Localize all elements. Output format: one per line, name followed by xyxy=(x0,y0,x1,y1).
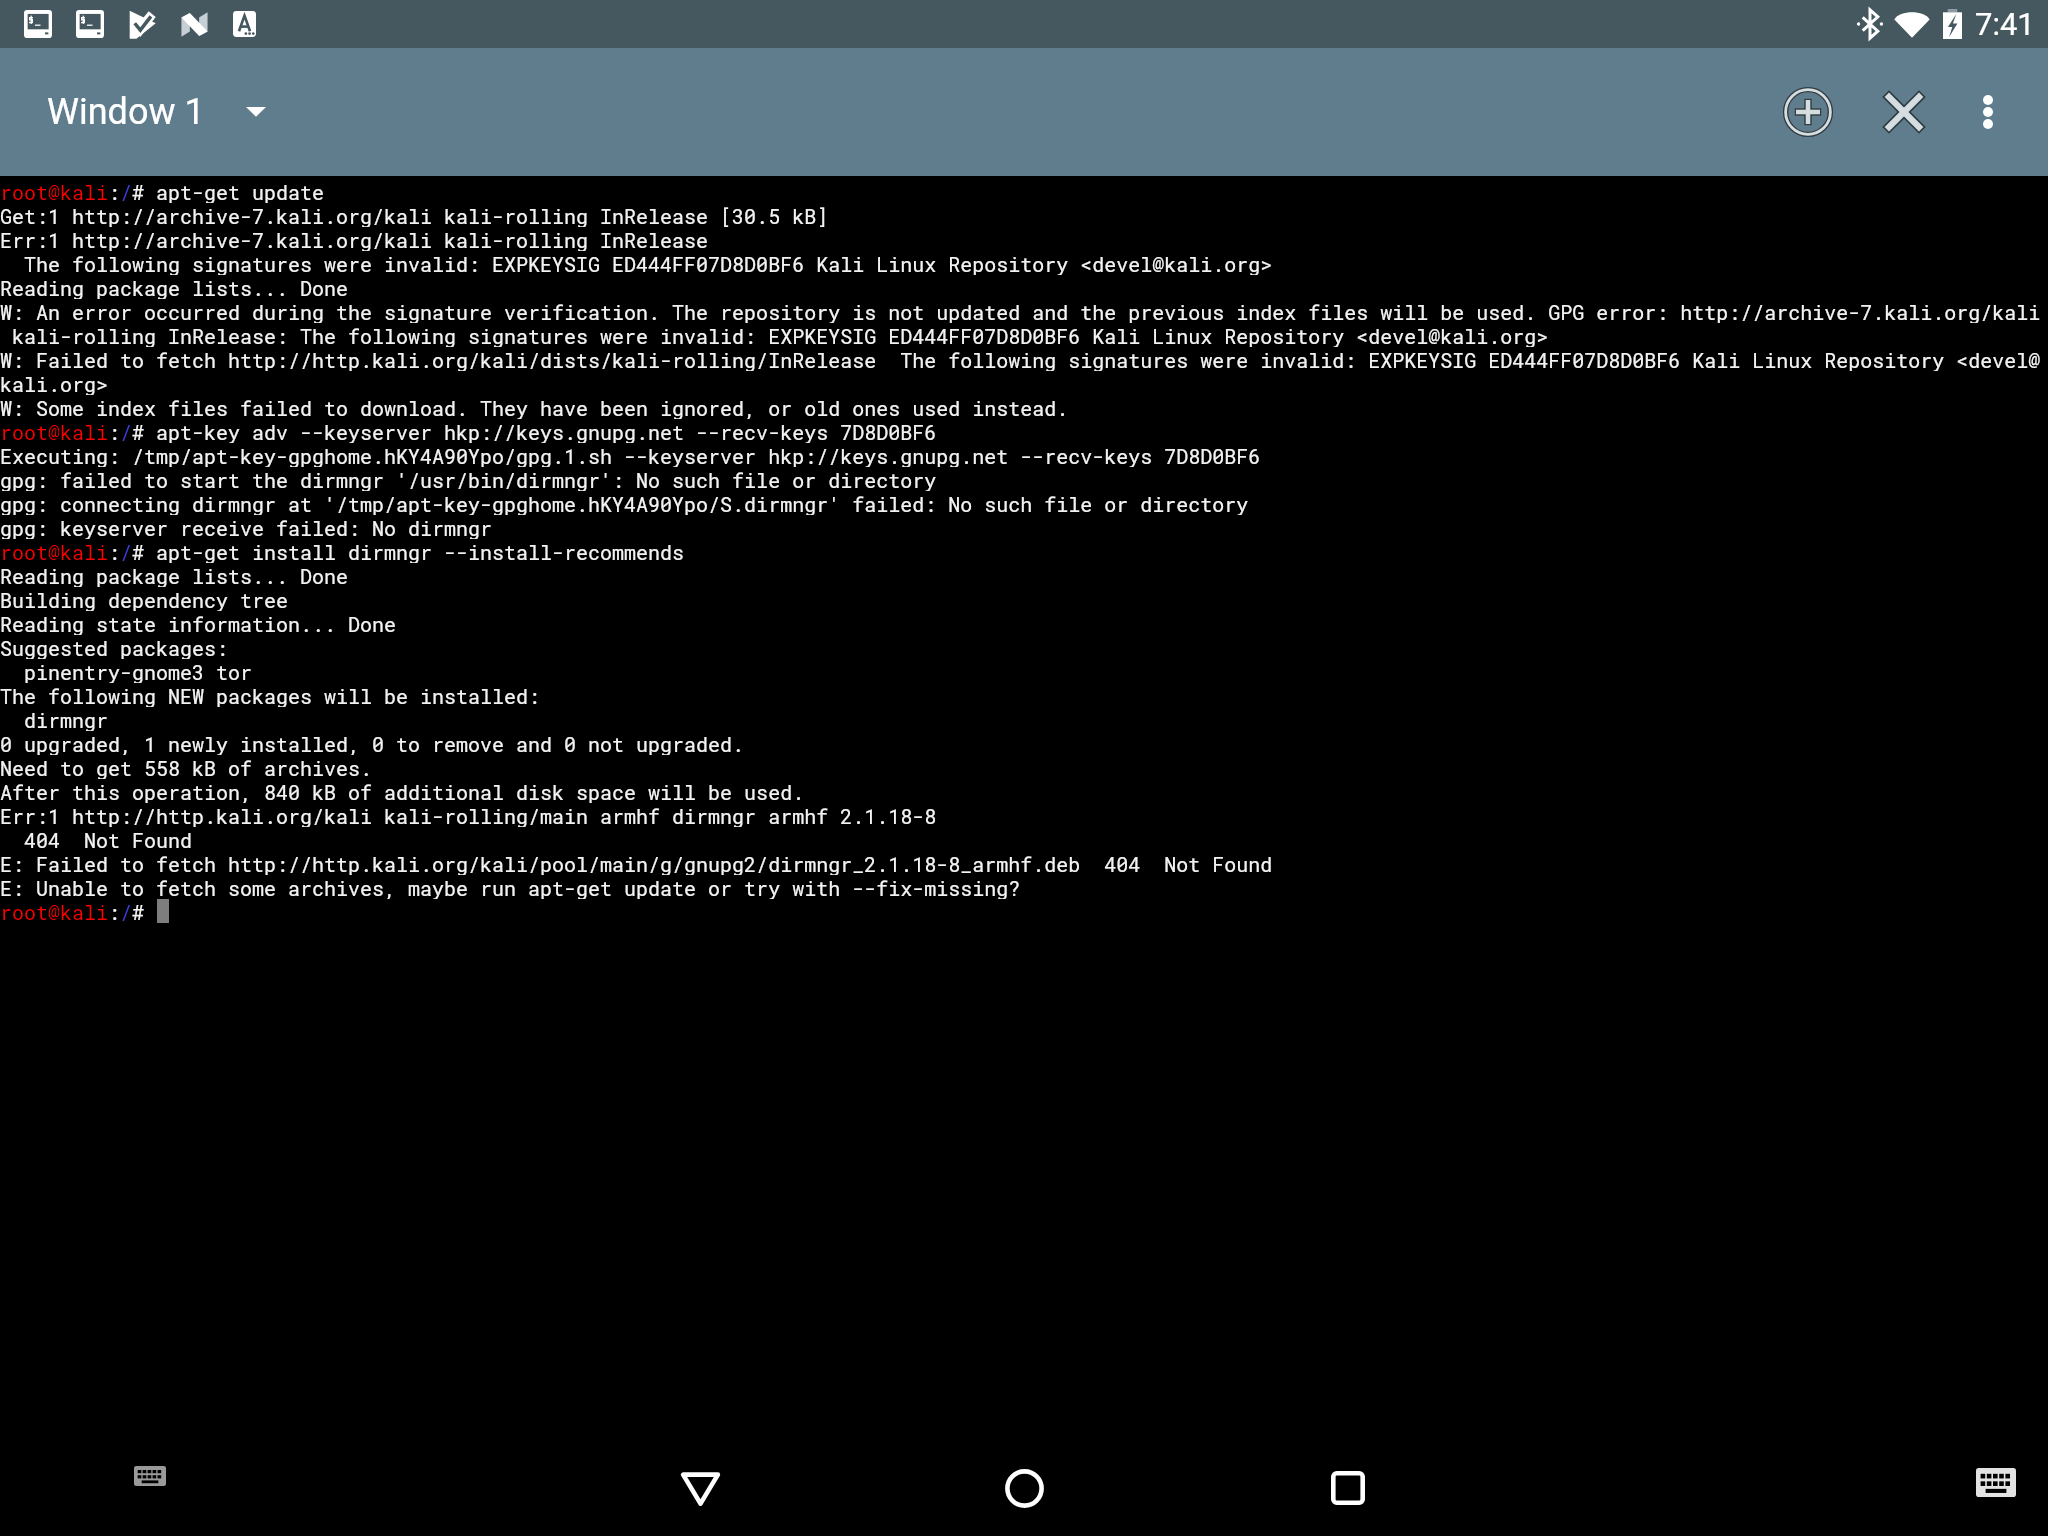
staticText: 404 Not Found xyxy=(0,827,193,851)
staticText: Reading state information... Done xyxy=(0,611,397,635)
staticText: root@kali:/# apt-get update xyxy=(0,179,325,203)
staticText: root@kali:/# xyxy=(0,899,157,923)
staticText: After this operation, 840 kB of addition… xyxy=(0,779,805,803)
staticText: Executing: /tmp/apt-key-gpghome.hKY4A90Y… xyxy=(0,443,1261,467)
button[interactable]: Show keyboard xyxy=(1960,1452,2032,1512)
button[interactable]: Close window xyxy=(1862,70,1946,154)
staticText: Window 1 xyxy=(47,91,205,133)
button[interactable]: root@kali:/# apt-get update xyxy=(0,176,2048,1428)
button[interactable]: New window xyxy=(1766,70,1850,154)
staticText: dirmngr xyxy=(0,707,109,731)
staticText: 0 upgraded, 1 newly installed, 0 to remo… xyxy=(0,731,745,755)
staticText: gpg: failed to start the dirmngr '/usr/b… xyxy=(0,467,937,491)
staticText: The following NEW packages will be insta… xyxy=(0,683,541,707)
button[interactable]: More options xyxy=(1952,76,2024,148)
staticText: W: Failed to fetch http://http.kali.org/… xyxy=(0,347,2041,371)
staticText: root@kali:/# apt-get install dirmngr --i… xyxy=(0,539,685,563)
button[interactable]: Window 1 xyxy=(0,48,290,176)
button[interactable]: Back xyxy=(652,1440,748,1536)
staticText: 7:41 xyxy=(1975,6,2035,42)
staticText: Building dependency tree xyxy=(0,587,289,611)
staticText: E: Failed to fetch http://http.kali.org/… xyxy=(0,851,1273,875)
staticText: root@kali:/# apt-key adv --keyserver hkp… xyxy=(0,419,937,443)
staticText: The following signatures were invalid: E… xyxy=(0,251,1273,275)
staticText: E: Unable to fetch some archives, maybe … xyxy=(0,875,1021,899)
staticText: kali.org> xyxy=(0,371,109,395)
button[interactable]: Recent apps xyxy=(1300,1440,1396,1536)
staticText: gpg: keyserver receive failed: No dirmng… xyxy=(0,515,493,539)
staticText: W: Some index files failed to download. … xyxy=(0,395,1069,419)
staticText: gpg: connecting dirmngr at '/tmp/apt-key… xyxy=(0,491,1249,515)
staticText: Reading package lists... Done xyxy=(0,275,349,299)
staticText: Get:1 http://archive-7.kali.org/kali kal… xyxy=(0,203,829,227)
staticText: Err:1 http://http.kali.org/kali kali-rol… xyxy=(0,803,937,827)
staticText: Reading package lists... Done xyxy=(0,563,349,587)
staticText: Need to get 558 kB of archives. xyxy=(0,755,373,779)
staticText: pinentry-gnome3 tor xyxy=(0,659,253,683)
staticText: Suggested packages: xyxy=(0,635,229,659)
staticText: W: An error occurred during the signatur… xyxy=(0,299,2041,323)
staticText: kali-rolling InRelease: The following si… xyxy=(0,323,1549,347)
staticText: Err:1 http://archive-7.kali.org/kali kal… xyxy=(0,227,709,251)
button[interactable]: Home xyxy=(976,1440,1072,1536)
button[interactable]: Hide keyboard xyxy=(126,1452,174,1500)
